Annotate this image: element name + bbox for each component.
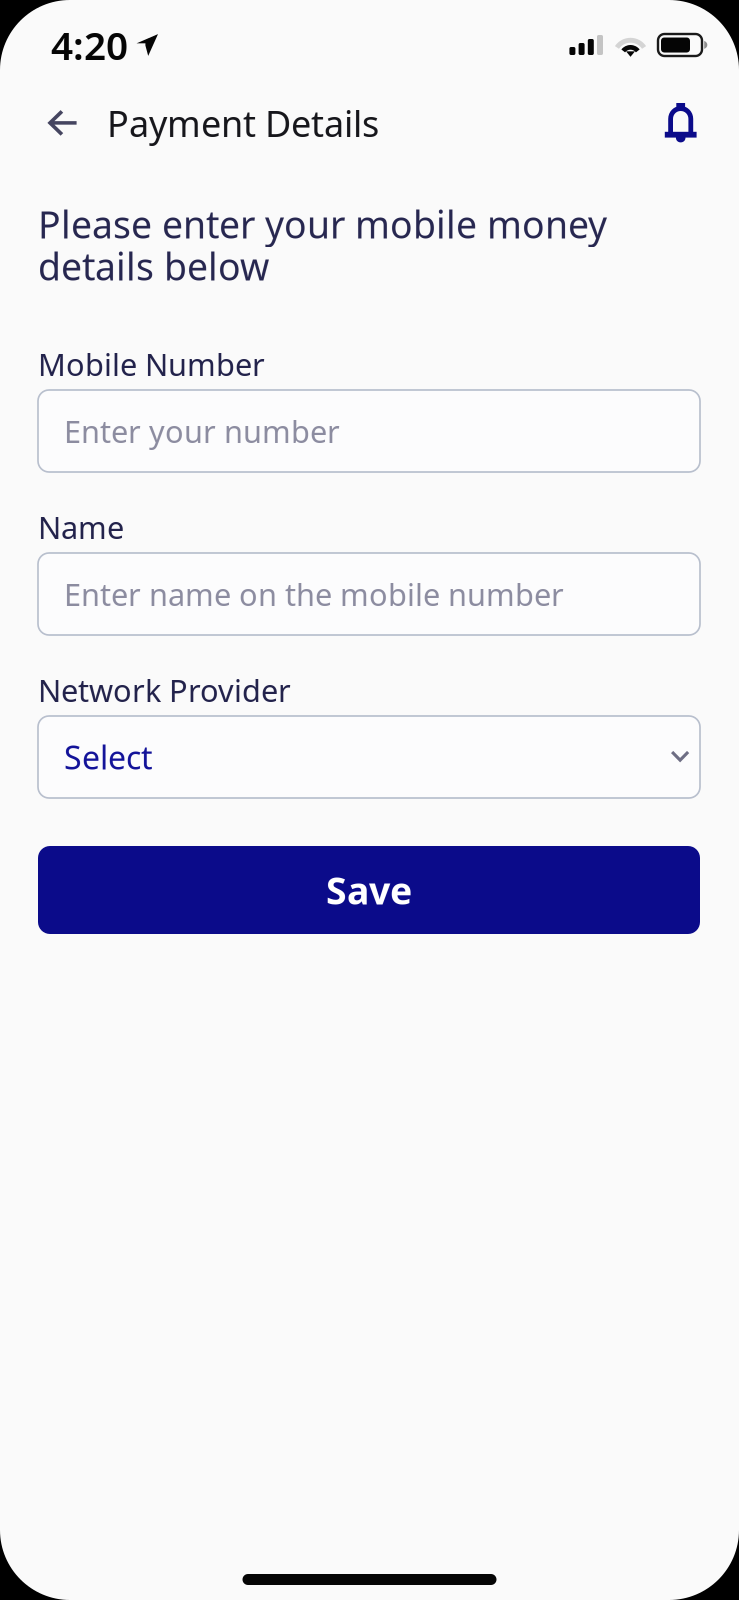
button[interactable]: Back [39, 94, 85, 152]
staticText: Network Provider [38, 670, 291, 710]
staticText: Enter your number [64, 411, 340, 451]
staticText: Select [64, 736, 153, 778]
staticText: Save [326, 865, 412, 915]
button[interactable]: Notifications [657, 94, 705, 152]
button[interactable]: Enter name on the mobile number [38, 553, 700, 635]
staticText: Please enter your mobile money [38, 199, 607, 249]
button[interactable]: Select [38, 716, 700, 798]
button[interactable]: Save [38, 846, 700, 934]
staticText: Payment Details [107, 99, 379, 147]
staticText: Enter name on the mobile number [64, 574, 564, 614]
staticText: Mobile Number [38, 344, 265, 384]
staticText: 4:20 [51, 19, 128, 71]
button[interactable]: Enter your number [38, 390, 700, 472]
staticText: Name [38, 507, 124, 547]
staticText: details below [38, 241, 269, 291]
